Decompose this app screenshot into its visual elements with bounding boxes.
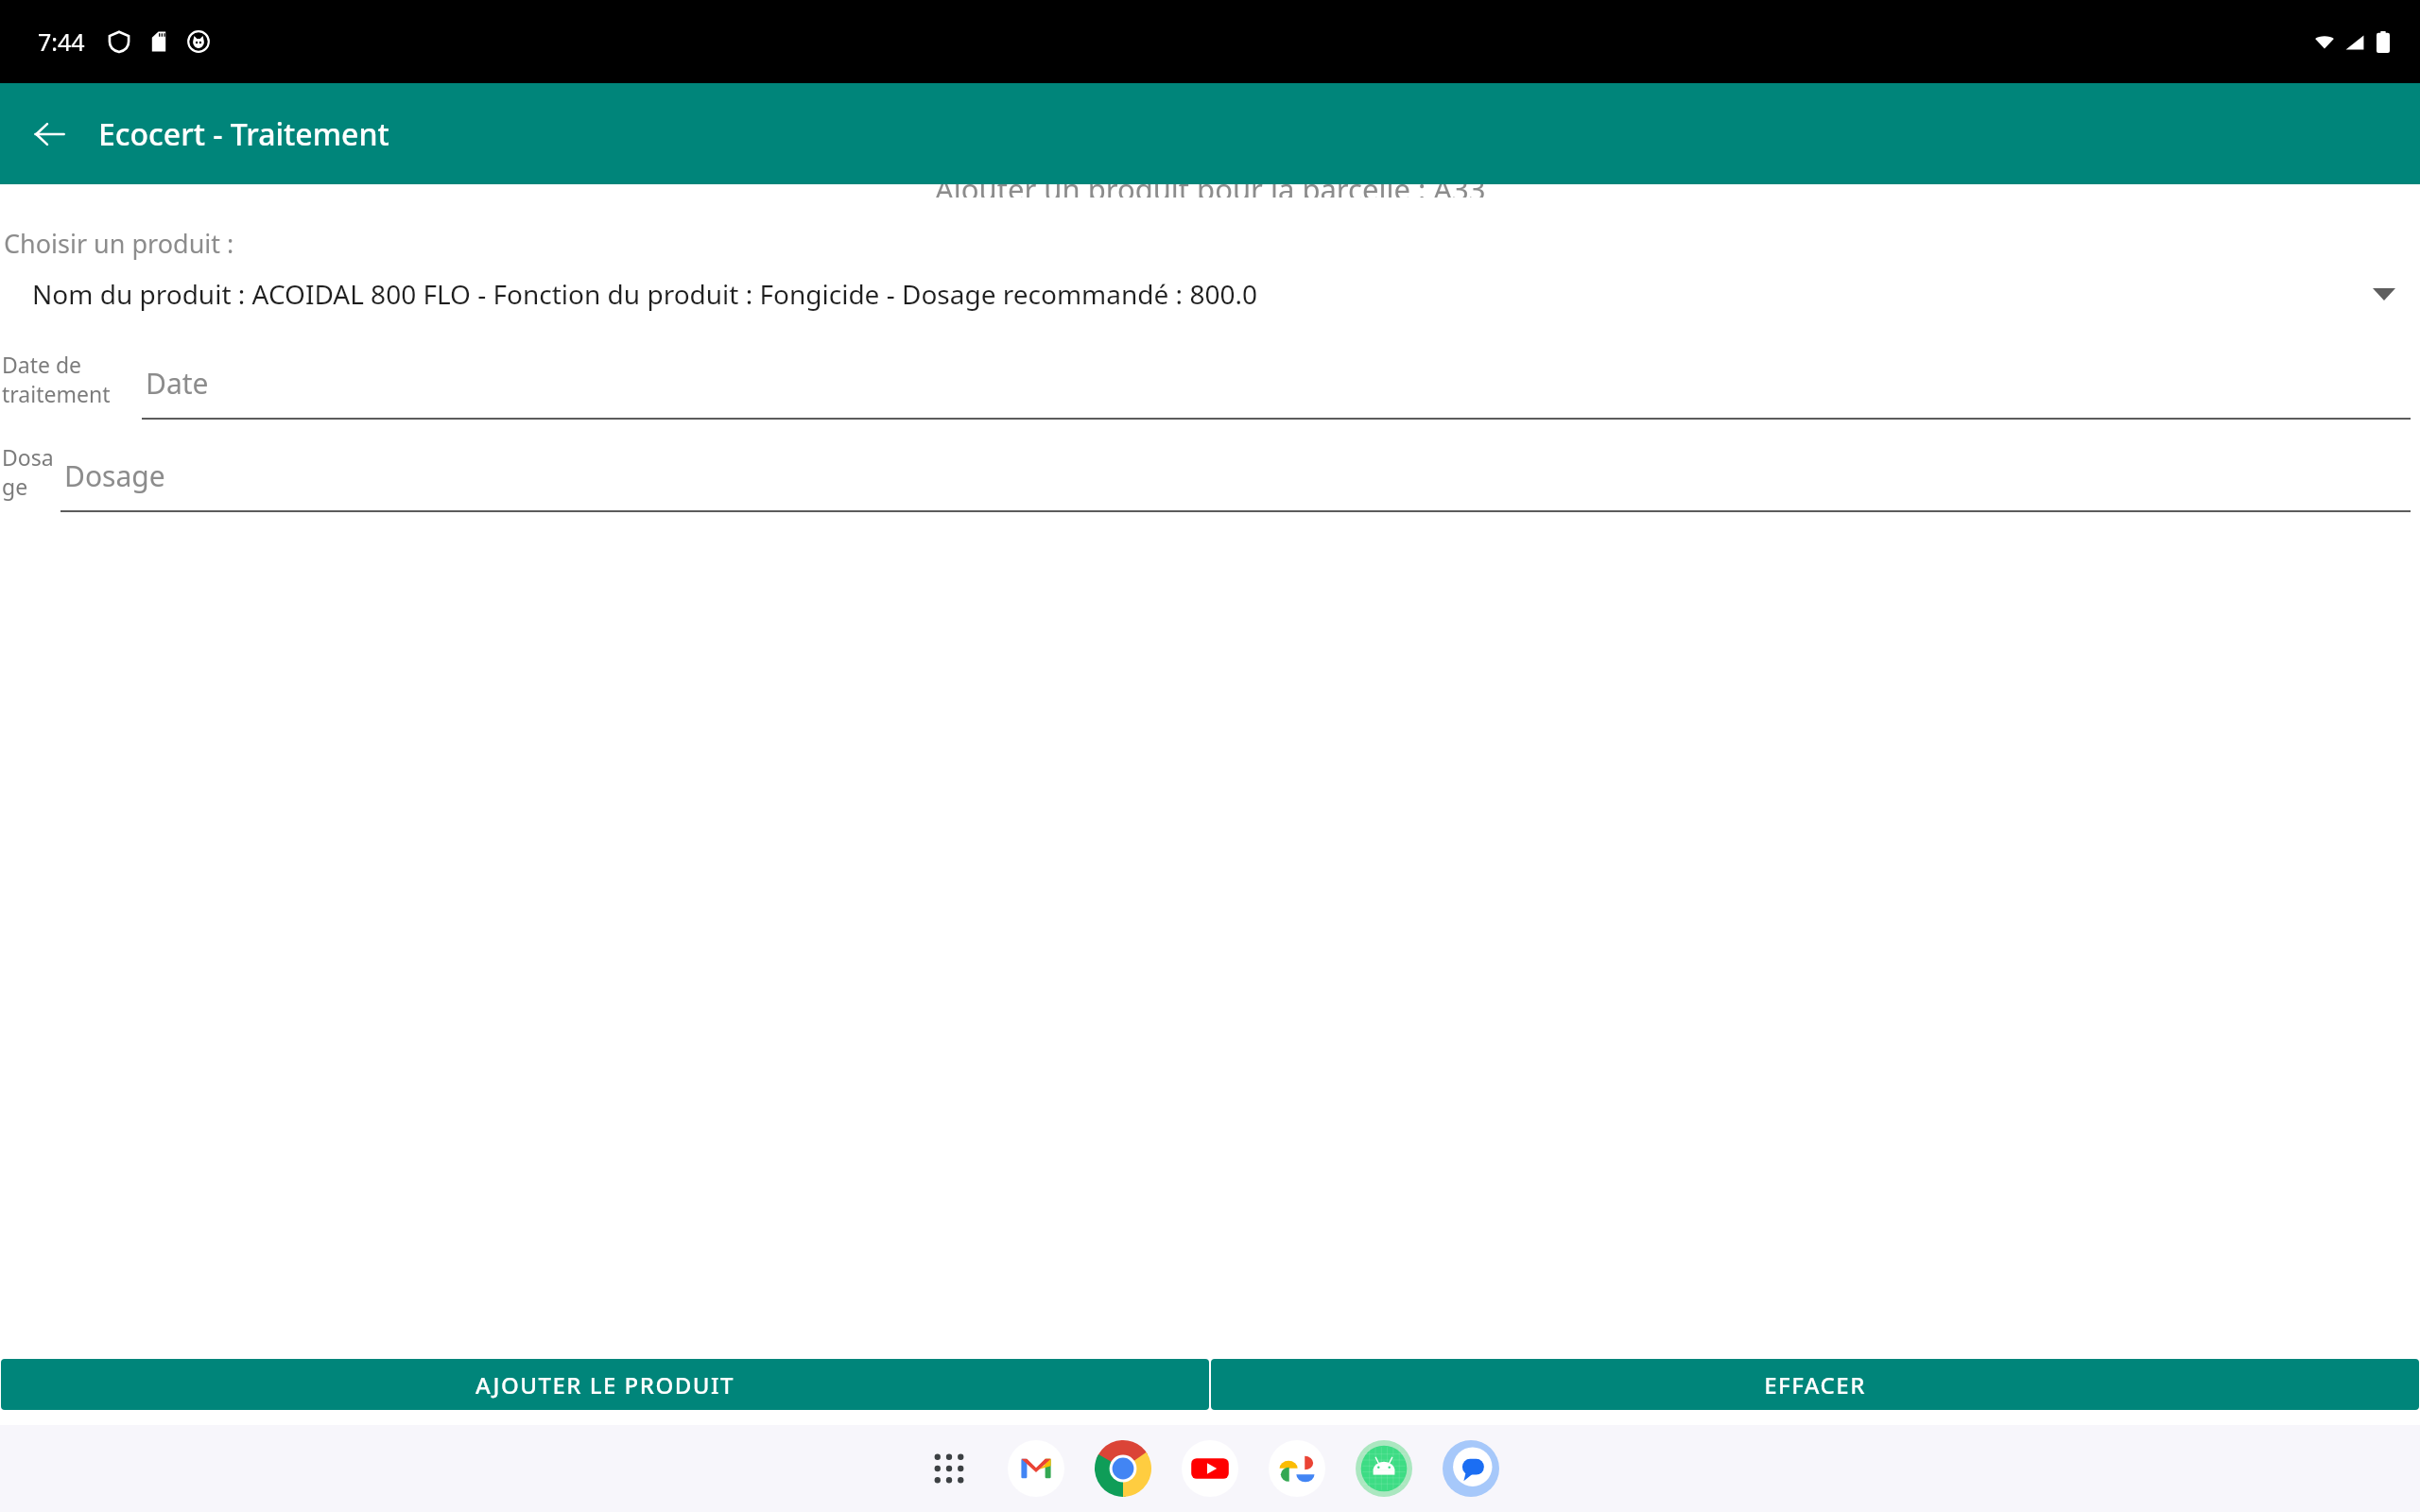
button[interactable]: Gmail [1006,1438,1066,1499]
staticText: Date de traitement [2,350,142,408]
button[interactable]: Chrome [1093,1438,1153,1499]
button[interactable]: Messages [1441,1438,1501,1499]
staticText: AJOUTER LE PRODUIT [475,1369,735,1400]
button[interactable]: EFFACER [1211,1359,2419,1410]
staticText: 7:44 [38,26,85,58]
button[interactable]: Choisir un produit [0,272,2420,316]
staticText: Dosage [64,456,165,495]
staticText: Dosage [2,442,60,501]
staticText: Nom du produit : ACOIDAL 800 FLO - Fonct… [32,276,2359,312]
staticText: EFFACER [1764,1369,1866,1400]
button[interactable]: Google Photos [1267,1438,1327,1499]
button[interactable]: AJOUTER LE PRODUIT [1,1359,1209,1410]
button[interactable]: Back [19,104,79,164]
button[interactable]: All apps [919,1438,979,1499]
staticText: Date [146,364,209,403]
staticText: Choisir un produit : [4,226,234,261]
button[interactable]: Dosage [0,442,2420,512]
button[interactable]: Android Studio [1354,1438,1414,1499]
button[interactable]: YouTube [1180,1438,1240,1499]
button[interactable]: Date de traitement [0,350,2420,420]
staticText: Ecocert - Traitement [98,113,389,155]
staticText: Ajouter un produit pour la parcelle : A3… [935,184,1486,198]
